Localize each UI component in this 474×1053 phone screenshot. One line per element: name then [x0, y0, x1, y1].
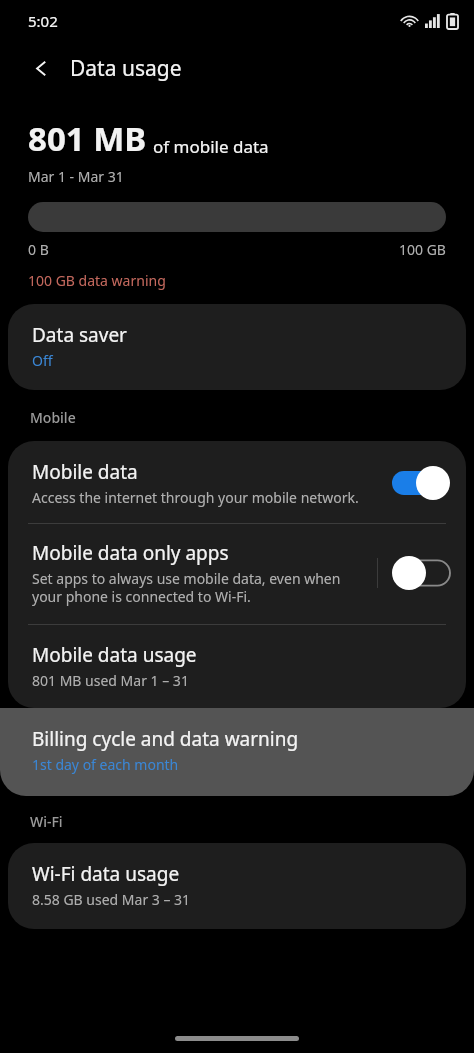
button[interactable]: Billing cycle and data warning	[0, 708, 474, 796]
staticText: Access the internet through your mobile …	[32, 488, 359, 507]
staticText: Mobile data	[32, 459, 138, 485]
button[interactable]: Data saver	[8, 304, 466, 390]
staticText: 100 GB data warning	[28, 271, 166, 290]
staticText: 8.58 GB used Mar 3 – 31	[32, 890, 191, 909]
button[interactable]: Mobile data on	[392, 466, 450, 500]
button[interactable]: Mobile data usage	[8, 625, 466, 708]
staticText: Mobile data usage	[32, 642, 197, 668]
staticText: Off	[32, 351, 53, 370]
staticText: Data saver	[32, 322, 127, 348]
staticText: Data usage	[70, 54, 182, 83]
staticText: 801 MB used Mar 1 – 31	[32, 671, 189, 690]
staticText: Set apps to always use mobile data, even…	[32, 569, 369, 606]
button[interactable]: Back	[18, 45, 64, 91]
staticText: Wi-Fi data usage	[32, 861, 180, 887]
staticText: 801 MB	[28, 116, 147, 161]
staticText: Mar 1 - Mar 31	[28, 167, 124, 186]
button[interactable]: Mobile data only apps	[8, 524, 466, 624]
staticText: of mobile data	[153, 135, 269, 158]
staticText: 100 GB	[399, 240, 446, 259]
button[interactable]: Mobile data only apps off	[392, 556, 450, 590]
staticText: 1st day of each month	[32, 755, 179, 774]
button[interactable]: Mobile data	[8, 441, 466, 523]
button[interactable]: Wi-Fi data usage	[8, 843, 466, 929]
staticText: 5:02	[28, 11, 58, 31]
staticText: Billing cycle and data warning	[32, 726, 299, 752]
staticText: 0 B	[28, 240, 49, 259]
staticText: Mobile	[30, 408, 76, 427]
staticText: Mobile data only apps	[32, 540, 229, 566]
staticText: Wi-Fi	[30, 812, 63, 831]
